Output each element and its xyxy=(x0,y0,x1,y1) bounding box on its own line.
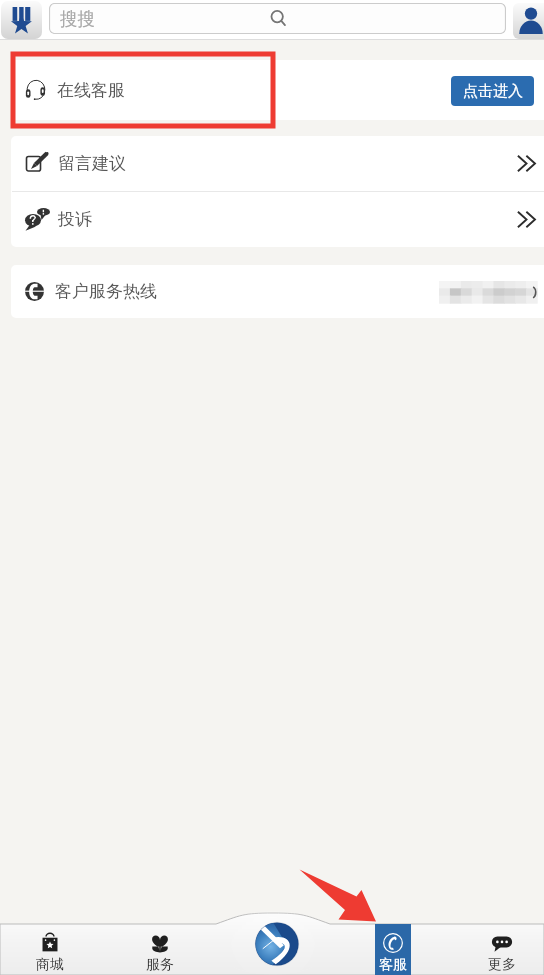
button[interactable]: 客服 xyxy=(375,924,411,975)
staticText: 留言建议 xyxy=(58,153,126,174)
button[interactable]: 点击进入 xyxy=(451,76,534,106)
button[interactable]: 商城 xyxy=(32,924,68,975)
button[interactable]: 搜搜 xyxy=(49,3,506,34)
button[interactable]: App home xyxy=(1,1,42,39)
button[interactable]: Account xyxy=(513,3,544,39)
staticText: 商城 xyxy=(36,956,64,974)
staticText: 服务 xyxy=(146,956,174,974)
staticText: 客服 xyxy=(379,956,407,974)
staticText: 在线客服 xyxy=(57,80,125,101)
button[interactable]: Home xyxy=(255,922,299,966)
button[interactable]: 更多 xyxy=(484,924,520,975)
staticText: 投诉 xyxy=(58,209,92,230)
staticText: 客户服务热线 xyxy=(55,281,157,302)
staticText: 更多 xyxy=(488,956,516,974)
button[interactable]: 在线客服 xyxy=(11,60,544,120)
staticText: 点击进入 xyxy=(463,82,523,101)
button[interactable]: 留言建议 xyxy=(11,136,544,191)
staticText: 搜搜 xyxy=(60,8,95,30)
button[interactable]: 服务 xyxy=(142,924,178,975)
button[interactable]: 客户服务热线 xyxy=(11,265,544,318)
button[interactable]: 投诉 xyxy=(11,192,544,247)
